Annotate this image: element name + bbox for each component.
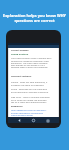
button[interactable]: Recent apps [45, 118, 50, 123]
staticText: Prone - Reserved for the client with acu… [11, 88, 49, 93]
staticText: http://www.ncbi.nlm.nih.gov/pmc/ article… [11, 109, 47, 116]
staticText: Tripod Position [11, 53, 29, 56]
button[interactable]: Home [31, 118, 36, 123]
staticText: The tripod position helps a patient with… [11, 57, 52, 68]
staticText: Side lying - Used to prevent aspiration … [11, 96, 50, 103]
staticText: Reference [11, 105, 23, 108]
staticText: Explanation helps you know WHY [3, 13, 66, 18]
staticText: questions are correct [14, 18, 55, 23]
button[interactable]: Back [17, 118, 22, 123]
staticText: Correct answer: [11, 49, 30, 52]
staticText: Supine - Does not help breathing, it inc… [11, 81, 48, 86]
staticText: Incorrect options: [11, 75, 32, 78]
